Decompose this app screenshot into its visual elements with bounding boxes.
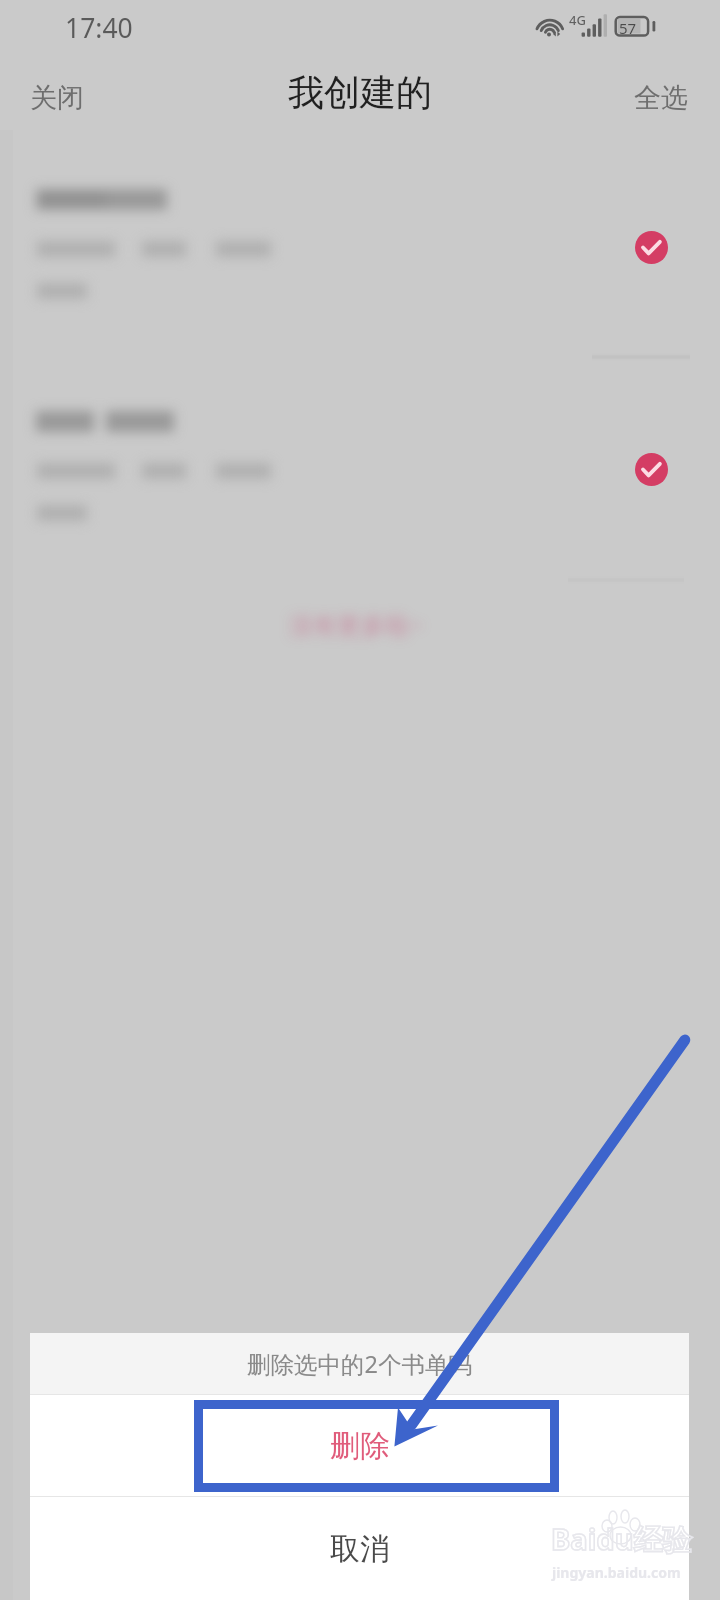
staticText: 17:40 xyxy=(65,10,133,46)
staticText: 全选 xyxy=(634,81,688,115)
staticText: Baidu经验 xyxy=(551,1519,692,1559)
staticText: jingyan.baidu.com xyxy=(552,1563,681,1582)
button[interactable]: 全选 xyxy=(622,71,700,125)
staticText: 4G xyxy=(569,11,586,29)
button[interactable]: Selected xyxy=(635,231,668,264)
staticText: 删除选中的2个书单吗 xyxy=(247,1348,472,1380)
button[interactable]: 取消 xyxy=(30,1497,689,1600)
button[interactable]: 关闭 xyxy=(18,71,96,125)
staticText: 没有更多啦~ xyxy=(289,608,423,641)
staticText: 关闭 xyxy=(30,81,84,115)
button[interactable]: Selected xyxy=(635,453,668,486)
staticText: 取消 xyxy=(330,1530,390,1568)
staticText: 删除 xyxy=(330,1427,390,1465)
staticText: 57 xyxy=(619,18,637,38)
button[interactable]: 删除 xyxy=(30,1395,689,1496)
staticText: 我创建的 xyxy=(288,70,432,115)
